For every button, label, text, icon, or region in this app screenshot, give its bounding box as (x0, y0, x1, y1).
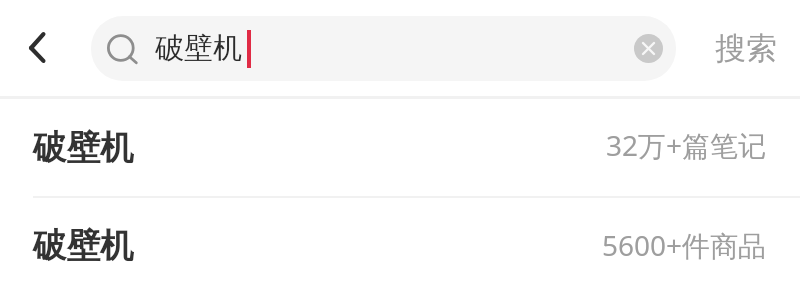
staticText: 搜索 (715, 29, 777, 68)
button[interactable]: 破壁机 (91, 16, 676, 81)
staticText: 破壁机 (155, 30, 242, 67)
staticText: 破壁机 (33, 225, 134, 267)
button[interactable]: 搜索 (715, 16, 777, 80)
staticText: 破壁机 (33, 127, 134, 169)
button[interactable]: Clear search text (634, 34, 663, 63)
button[interactable]: 破壁机 (0, 99, 800, 196)
staticText: 32万+篇笔记 (606, 126, 767, 164)
button[interactable]: 破壁机 (0, 204, 800, 288)
button[interactable]: Back (8, 17, 70, 79)
staticText: 5600+件商品 (602, 226, 767, 264)
